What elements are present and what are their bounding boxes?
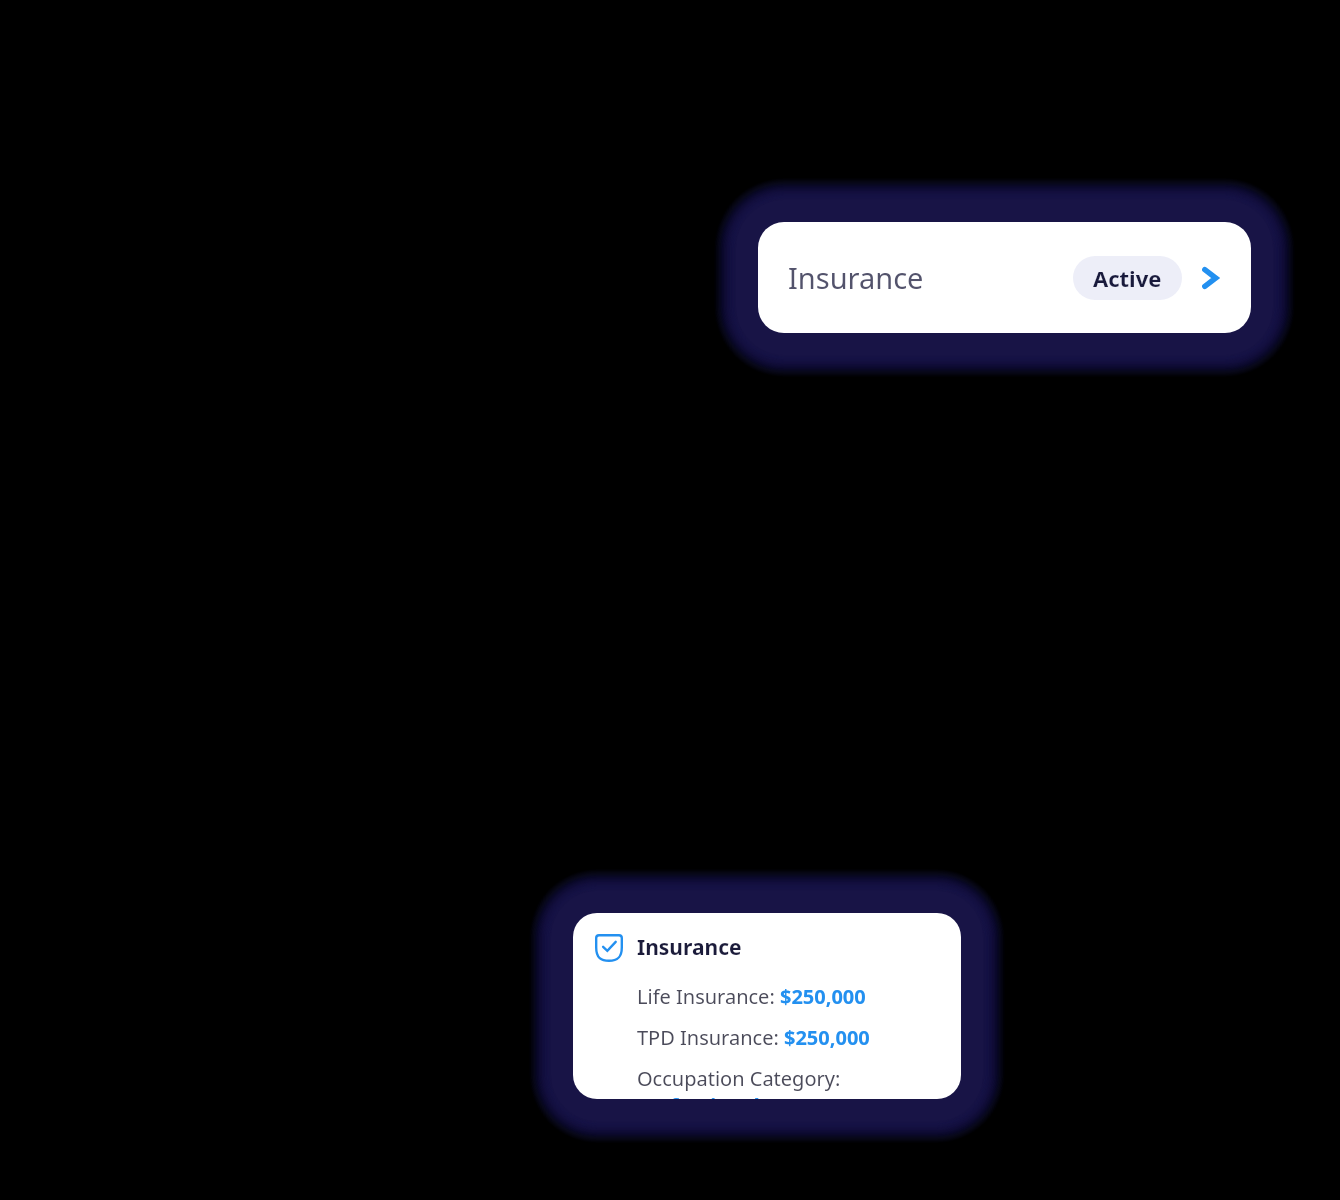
staticText: Insurance bbox=[788, 258, 924, 297]
staticText: Insurance bbox=[637, 933, 742, 962]
button[interactable]: Active bbox=[1073, 256, 1182, 300]
staticText: Life Insurance: $250,000 bbox=[637, 983, 866, 1010]
staticText: Occupation Category: Professional bbox=[637, 1065, 943, 1099]
staticText: Active bbox=[1093, 263, 1162, 293]
staticText: TPD Insurance: $250,000 bbox=[637, 1024, 870, 1051]
button[interactable]: Insurance bbox=[758, 222, 1251, 333]
button[interactable]: Insurance bbox=[573, 913, 961, 1099]
button[interactable]: Open insurance details bbox=[1195, 263, 1225, 293]
